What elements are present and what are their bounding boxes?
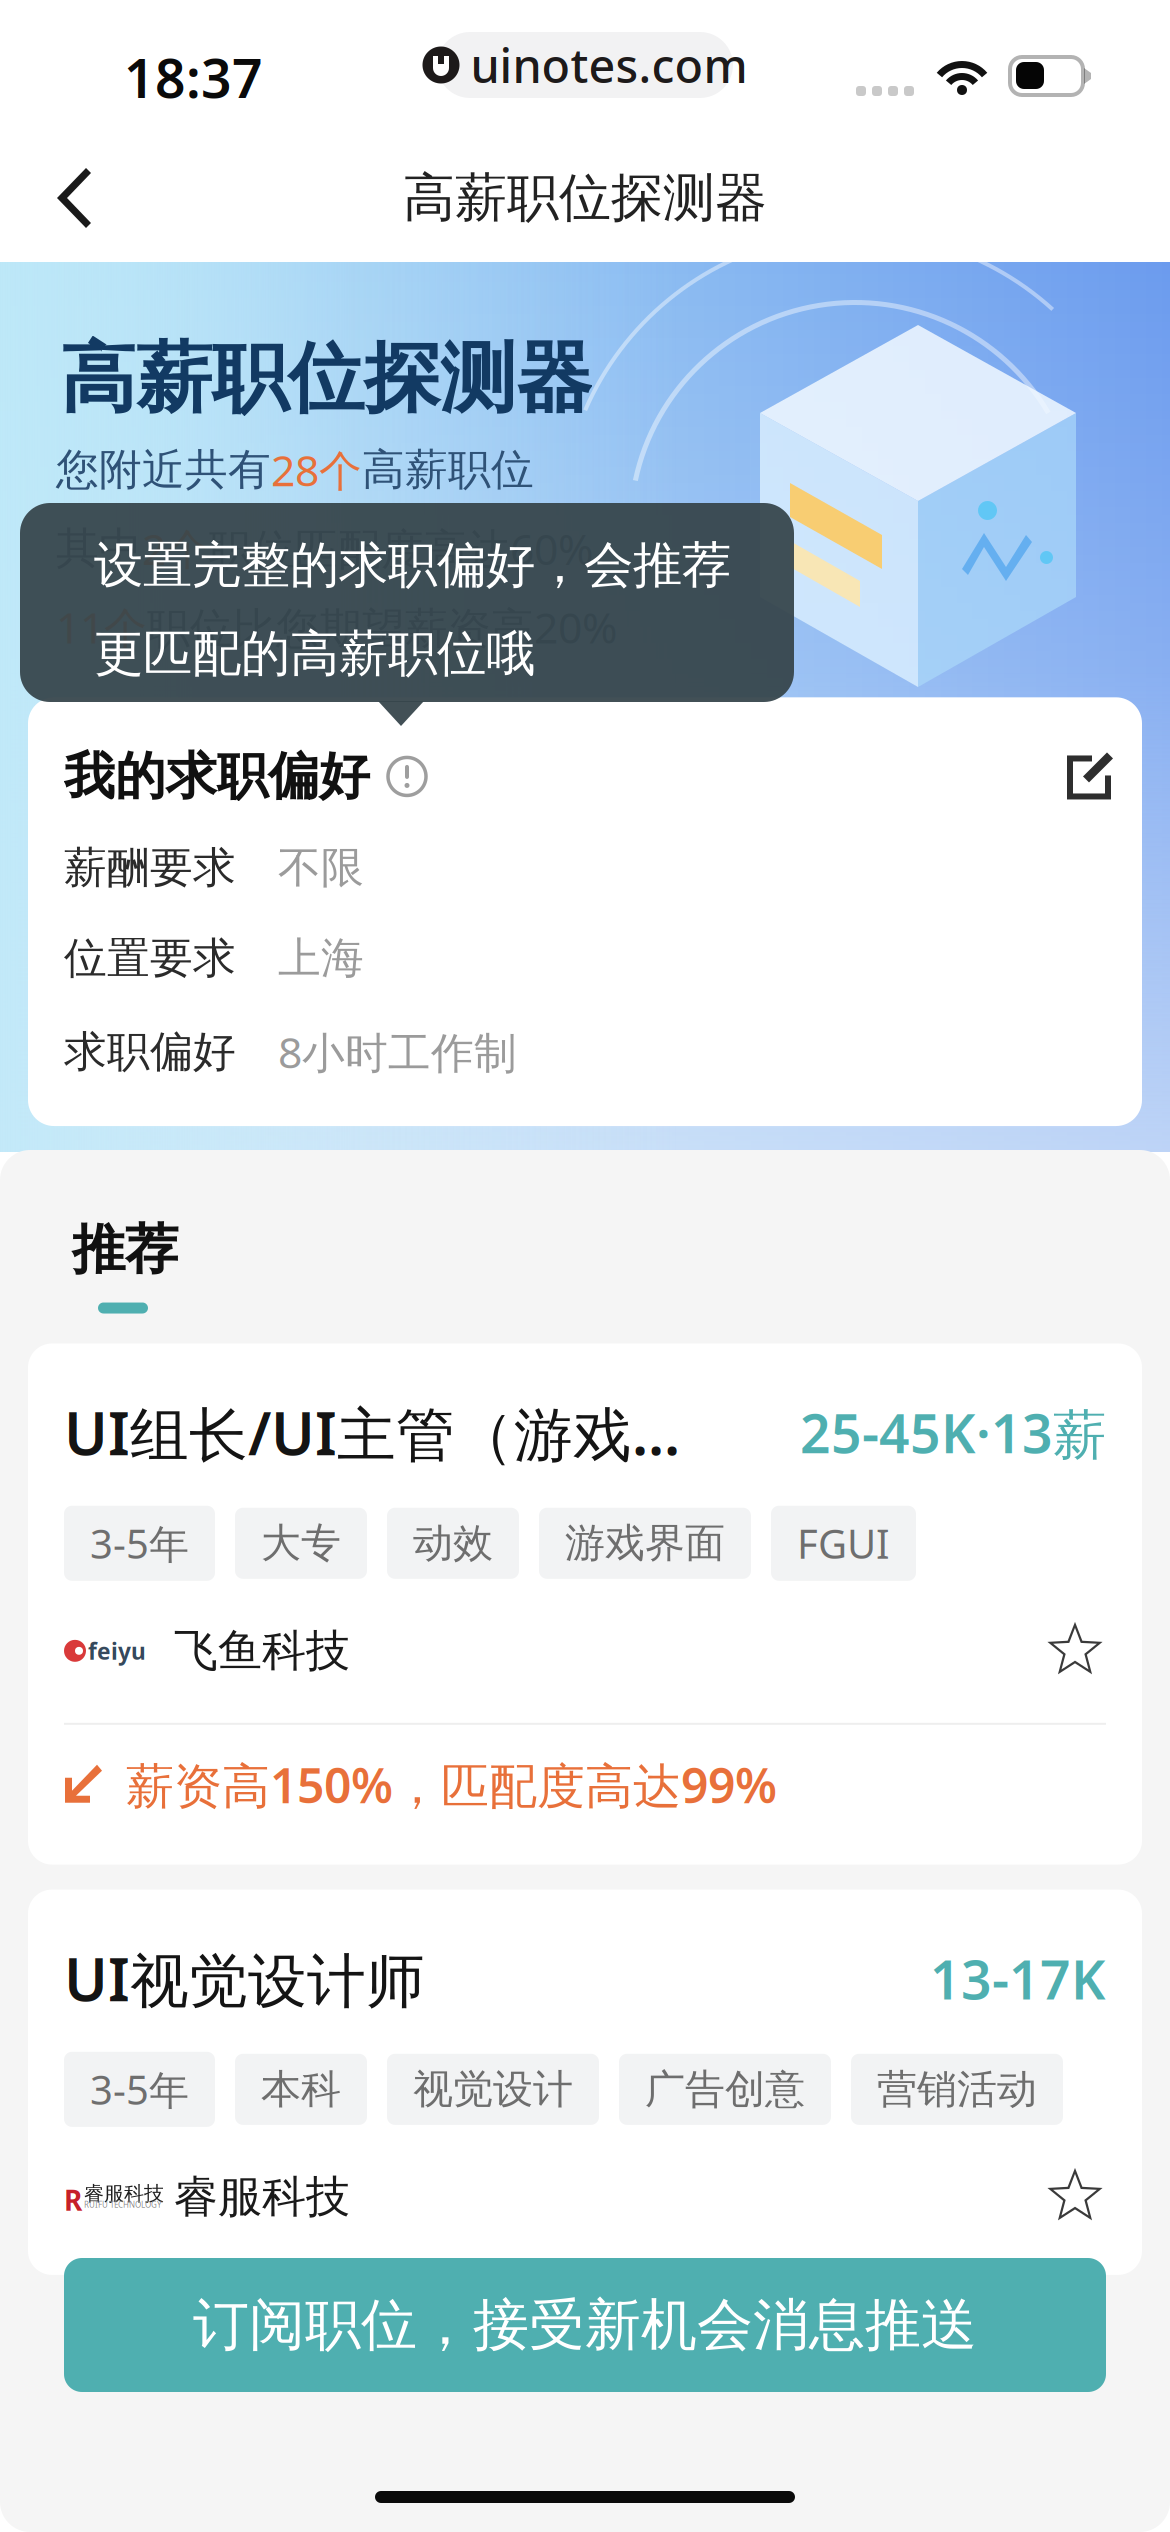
button[interactable]: Back [0, 148, 132, 248]
staticText: 25-45K·13薪 [800, 1397, 1106, 1468]
staticText: feiyu [88, 1636, 146, 1666]
staticText: 8小时工作制 [278, 1023, 517, 1080]
staticText: UI组长/UI主管（游戏... [64, 1393, 680, 1472]
staticText: 订阅职位，接受新机会消息推送 [193, 2291, 977, 2359]
staticText: 飞鱼科技 [174, 1624, 350, 1678]
staticText: 薪资高150%，匹配度高达99% [126, 1753, 777, 1816]
staticText: 11个 [56, 599, 147, 655]
staticText: 求职偏好 [64, 1025, 236, 1078]
staticText: 上海 [278, 932, 364, 984]
staticText: 大专 [261, 1519, 341, 1568]
staticText: 3-5年 [90, 1517, 189, 1570]
staticText: 其中 [56, 522, 142, 574]
staticText: FGUI [797, 1517, 890, 1570]
staticText: 设置完整的求职偏好，会推荐 [94, 535, 731, 596]
staticText: 您附近共有 [56, 443, 271, 496]
staticText: 动效 [413, 1519, 493, 1568]
staticText: 高薪职位 [362, 443, 534, 496]
staticText: 28个 [271, 441, 362, 498]
staticText: 不限 [278, 842, 364, 894]
staticText: 更匹配的高薪职位哦 [94, 624, 535, 684]
staticText: 3-5年 [90, 2063, 189, 2116]
staticText: 薪酬要求 [64, 842, 236, 894]
staticText: 视觉设计 [413, 2065, 573, 2114]
staticText: RUIFU TECHNOLOGY [84, 2199, 162, 2210]
staticText: R [64, 2181, 82, 2218]
button[interactable]: Save job [1044, 2167, 1106, 2227]
button[interactable]: Save job [1044, 1621, 1106, 1681]
staticText: 睿服科技 [84, 2181, 164, 2206]
staticText: 职位匹配度高达60% [209, 520, 593, 577]
staticText: 高薪职位探测器 [403, 166, 767, 230]
staticText: 2个 [142, 520, 209, 577]
staticText: 睿服科技 [174, 2170, 350, 2224]
staticText: 高薪职位探测器 [60, 332, 592, 425]
staticText: 本科 [261, 2065, 341, 2114]
staticText: 18:37 [124, 42, 263, 113]
button[interactable]: Edit job preferences [1064, 752, 1114, 800]
button[interactable]: UI视觉设计师 [28, 1890, 1142, 2275]
staticText: uinotes.com [470, 34, 747, 96]
staticText: 营销活动 [877, 2065, 1037, 2114]
staticText: UI视觉设计师 [64, 1940, 425, 2018]
button[interactable]: 订阅职位，接受新机会消息推送 [64, 2258, 1106, 2392]
staticText: 位置要求 [64, 932, 236, 984]
staticText: 职位比您期望薪资高20% [147, 599, 617, 655]
staticText: 我的求职偏好 [64, 745, 370, 807]
staticText: 13-17K [930, 1943, 1106, 2014]
staticText: 游戏界面 [565, 1519, 725, 1568]
staticText: 推荐 [72, 1217, 178, 1282]
button[interactable]: UI组长/UI主管（游戏... [28, 1343, 1142, 1865]
staticText: 广告创意 [645, 2065, 805, 2114]
